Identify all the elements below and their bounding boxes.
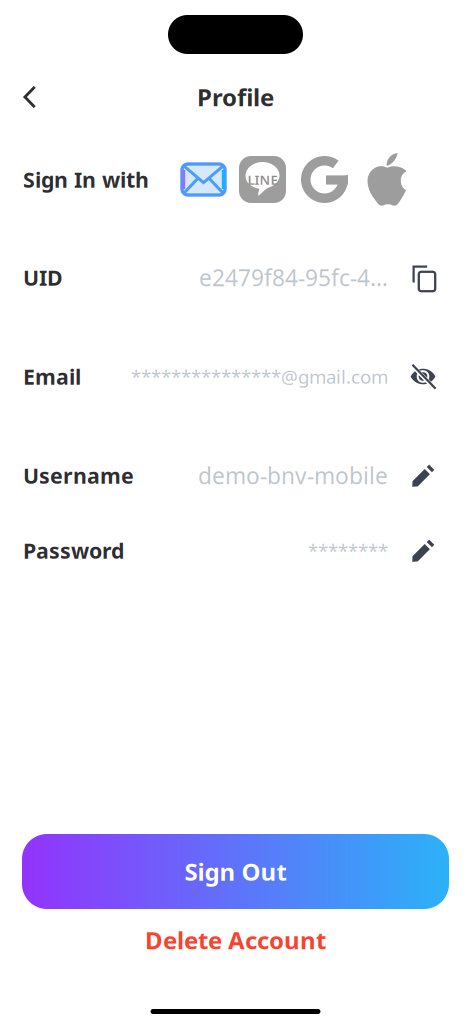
staticText: Username [23, 461, 134, 490]
staticText: LINE [247, 171, 277, 188]
button[interactable]: Sign in with LINE [239, 151, 286, 207]
button[interactable]: Sign in with Google [301, 151, 348, 207]
staticText: demo-bnv-mobile [198, 460, 388, 490]
button[interactable]: Sign in with Email [181, 151, 226, 207]
staticText: Delete Account [145, 924, 326, 956]
button[interactable]: Copy UID [388, 228, 458, 327]
button[interactable]: Sign Out [22, 834, 449, 909]
staticText: Email [23, 362, 81, 391]
button[interactable]: Delete Account [0, 909, 471, 971]
staticText: Sign In with [23, 165, 149, 194]
staticText: ******** [308, 538, 388, 563]
staticText: e2479f84-95fc-4… [199, 262, 388, 292]
staticText: UID [23, 263, 63, 292]
staticText: ***************@gmail.com [131, 364, 388, 389]
button[interactable]: Show email [388, 327, 458, 426]
staticText: Profile [197, 81, 274, 113]
button[interactable]: Edit username [388, 426, 458, 525]
button[interactable]: Back [6, 73, 54, 121]
staticText: Password [23, 536, 124, 565]
staticText: Sign Out [184, 856, 286, 887]
button[interactable]: Edit password [388, 525, 458, 576]
button[interactable]: Sign in with Apple [366, 151, 408, 207]
